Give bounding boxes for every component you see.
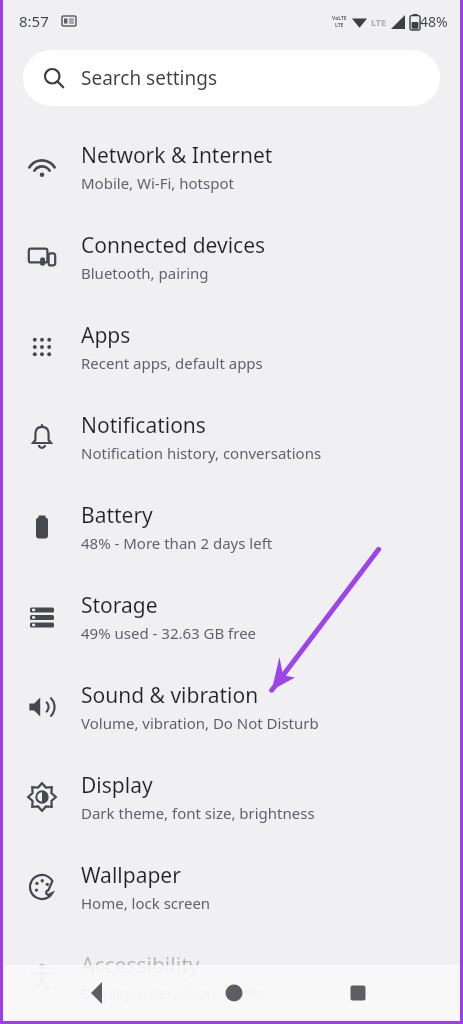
staticText: 48% - More than 2 days left (81, 533, 273, 553)
button[interactable]: Home (212, 971, 256, 1015)
staticText: Accessibility (81, 951, 200, 980)
staticText: Connected devices (81, 231, 266, 260)
staticText: Storage (81, 591, 158, 620)
staticText: Recent apps, default apps (81, 353, 263, 373)
button[interactable]: Display (3, 752, 460, 842)
staticText: Network & Internet (81, 141, 273, 170)
staticText: Search settings (81, 65, 218, 91)
staticText: Sound & vibration (81, 681, 259, 710)
staticText: Mobile, Wi-Fi, hotspot (81, 173, 234, 193)
staticText: Volume, vibration, Do Not Disturb (81, 713, 319, 733)
button[interactable]: Accessibility (3, 932, 460, 1021)
staticText: 49% used - 32.63 GB free (81, 623, 257, 643)
button[interactable]: Apps (3, 302, 460, 392)
staticText: Display, interaction, audio (81, 983, 264, 1003)
button[interactable]: Recent apps (336, 971, 380, 1015)
staticText: Apps (81, 321, 131, 350)
staticText: Home, lock screen (81, 893, 211, 913)
button[interactable]: Connected devices (3, 212, 460, 302)
staticText: Notification history, conversations (81, 443, 322, 463)
staticText: Notifications (81, 411, 206, 440)
button[interactable]: Sound & vibration (3, 662, 460, 752)
staticText: LTE (371, 16, 387, 28)
staticText: LTE (335, 22, 344, 29)
staticText: 48% (420, 12, 448, 31)
button[interactable]: Storage (3, 572, 460, 662)
staticText: Dark theme, font size, brightness (81, 803, 315, 823)
staticText: Display (81, 771, 153, 800)
staticText: 8:57 (19, 11, 49, 31)
button[interactable]: Search settings (23, 50, 440, 106)
button[interactable]: Back (75, 971, 119, 1015)
button[interactable]: Wallpaper (3, 842, 460, 932)
staticText: Bluetooth, pairing (81, 263, 209, 283)
staticText: Wallpaper (81, 861, 181, 890)
button[interactable]: Notifications (3, 392, 460, 482)
staticText: Battery (81, 501, 153, 530)
button[interactable]: Network & Internet (3, 122, 460, 212)
staticText: VoLTE (332, 15, 347, 22)
button[interactable]: Battery (3, 482, 460, 572)
